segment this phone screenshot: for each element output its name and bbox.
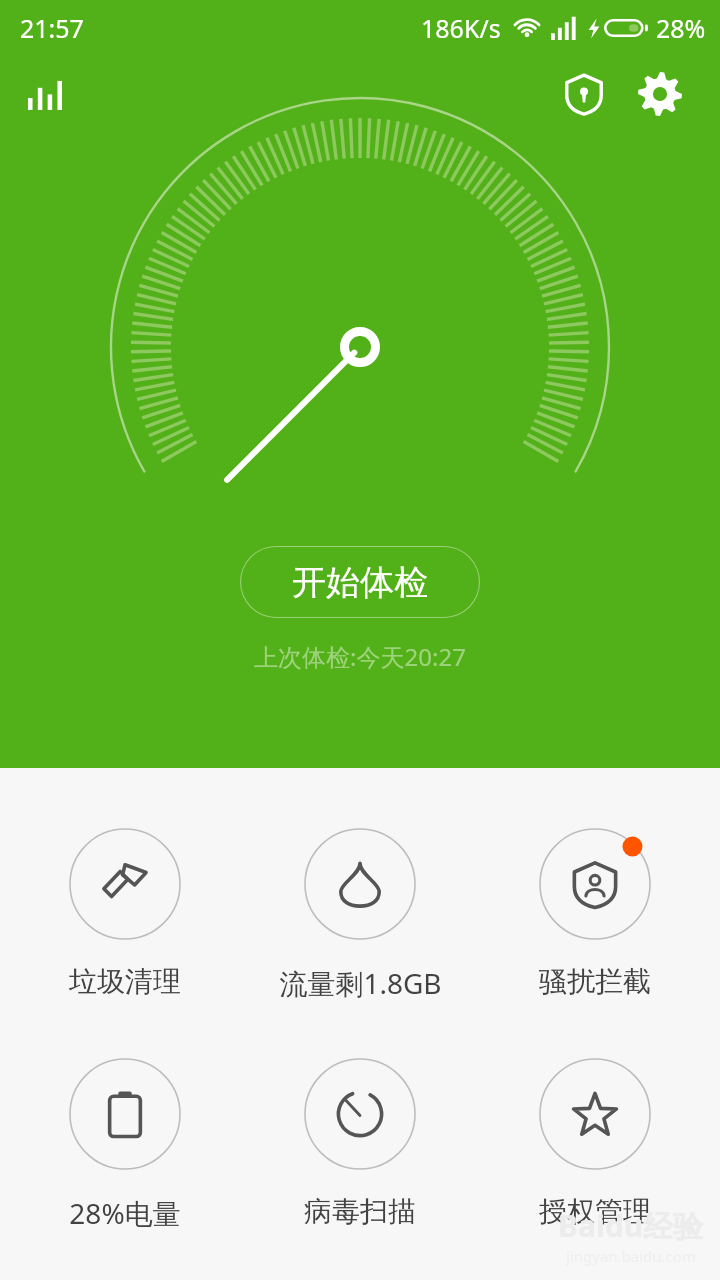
button[interactable]: 开始体检 bbox=[240, 546, 480, 618]
button[interactable]: 授权管理 bbox=[485, 1058, 705, 1229]
staticText: Baidu经验 bbox=[558, 1205, 704, 1246]
button[interactable]: 流量剩1.8GB bbox=[250, 828, 470, 1002]
button[interactable]: 骚扰拦截 bbox=[485, 828, 705, 999]
staticText: 垃圾清理 bbox=[69, 964, 181, 999]
staticText: 186K/s bbox=[421, 11, 501, 45]
button[interactable]: Security bbox=[546, 56, 622, 132]
staticText: 流量剩1.8GB bbox=[279, 964, 442, 1002]
button[interactable]: 病毒扫描 bbox=[250, 1058, 470, 1229]
staticText: 28% bbox=[656, 11, 706, 45]
staticText: 21:57 bbox=[20, 11, 84, 45]
staticText: 28%电量 bbox=[69, 1194, 181, 1232]
staticText: 病毒扫描 bbox=[304, 1194, 416, 1229]
button[interactable]: 垃圾清理 bbox=[15, 828, 235, 999]
button[interactable]: Traffic statistics bbox=[12, 62, 78, 128]
staticText: 授权管理 bbox=[539, 1194, 651, 1229]
button[interactable]: 28%电量 bbox=[15, 1058, 235, 1232]
staticText: 骚扰拦截 bbox=[539, 964, 651, 999]
button[interactable]: Settings bbox=[622, 56, 698, 132]
staticText: 开始体检 bbox=[292, 561, 428, 604]
staticText: 上次体检:今天20:27 bbox=[254, 640, 466, 673]
